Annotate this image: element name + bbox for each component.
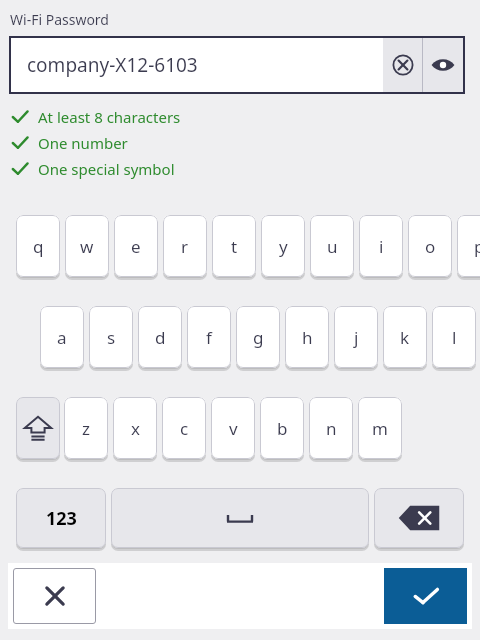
button[interactable]: q [16,215,60,277]
button[interactable]: p [457,215,480,277]
staticText: h [302,326,313,349]
button[interactable]: Shift [16,397,60,459]
button[interactable]: f [187,306,231,368]
button[interactable]: Show password [423,38,463,92]
button[interactable]: One number [10,131,128,155]
button[interactable]: m [358,397,402,459]
staticText: a [57,326,67,349]
staticText: c [180,417,189,440]
button[interactable]: r [163,215,207,277]
button[interactable]: 123 [16,488,106,548]
staticText: o [425,235,436,258]
button[interactable]: c [162,397,206,459]
button[interactable]: Confirm [384,568,467,624]
button[interactable]: t [212,215,256,277]
button[interactable]: Backspace [374,488,464,548]
button[interactable]: a [40,306,84,368]
button[interactable]: One special symbol [10,157,175,181]
staticText: l [452,326,457,349]
button[interactable]: Clear text [383,38,423,92]
staticText: e [131,235,141,258]
button[interactable]: k [383,306,427,368]
staticText: At least 8 characters [38,107,181,127]
button[interactable]: d [138,306,182,368]
staticText: x [131,417,140,440]
button[interactable]: Space [111,488,369,548]
button[interactable]: o [408,215,452,277]
button[interactable]: At least 8 characters [10,105,181,129]
staticText: q [33,235,44,258]
button[interactable]: i [359,215,403,277]
button[interactable]: company-X12-6103 [9,36,465,94]
staticText: g [253,326,264,349]
button[interactable]: x [113,397,157,459]
button[interactable]: w [65,215,109,277]
staticText: f [206,326,212,349]
staticText: i [379,235,384,258]
staticText: One special symbol [38,159,175,179]
staticText: y [279,235,288,258]
staticText: v [229,417,238,440]
button[interactable]: v [211,397,255,459]
staticText: m [372,417,388,440]
staticText: b [277,417,288,440]
button[interactable]: Cancel [13,568,96,624]
button[interactable]: b [260,397,304,459]
staticText: w [80,235,94,258]
staticText: Wi-Fi Password [10,10,109,29]
button[interactable]: h [285,306,329,368]
button[interactable]: u [310,215,354,277]
staticText: t [231,235,238,258]
staticText: d [155,326,166,349]
button[interactable]: e [114,215,158,277]
staticText: company-X12-6103 [27,52,198,78]
staticText: p [474,235,480,258]
staticText: n [326,417,337,440]
staticText: u [327,235,338,258]
staticText: s [107,326,116,349]
button[interactable]: j [334,306,378,368]
button[interactable]: y [261,215,305,277]
button[interactable]: g [236,306,280,368]
staticText: r [181,235,189,258]
staticText: j [354,326,359,349]
staticText: One number [38,133,128,153]
button[interactable]: n [309,397,353,459]
button[interactable]: s [89,306,133,368]
button[interactable]: z [64,397,108,459]
button[interactable]: l [432,306,476,368]
staticText: k [400,326,410,349]
staticText: 123 [46,506,77,531]
staticText: z [82,417,90,440]
